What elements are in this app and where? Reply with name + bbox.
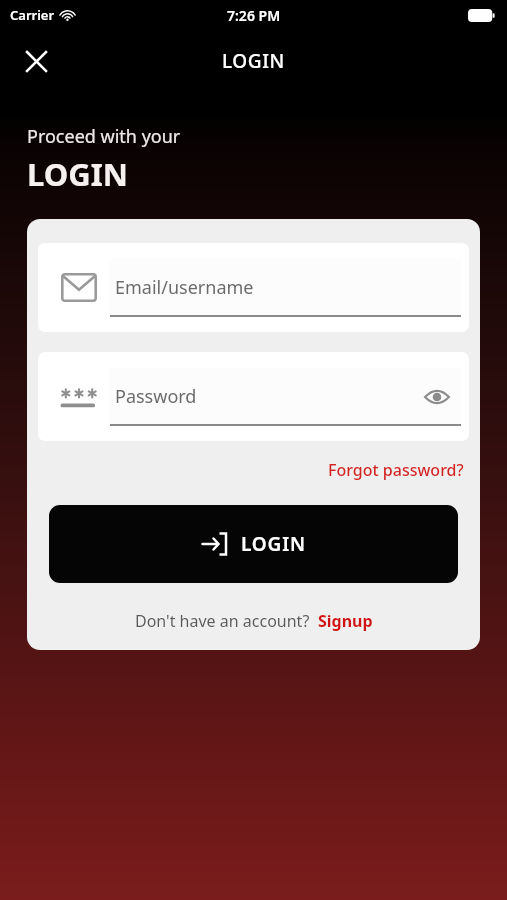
staticText: 7:26 PM (227, 6, 281, 25)
staticText: Forgot password? (328, 459, 464, 481)
button[interactable]: Close (14, 39, 58, 83)
staticText: Don't have an account? (135, 610, 310, 632)
button[interactable]: Email/username (38, 243, 469, 332)
other: Show password (424, 388, 450, 406)
button[interactable]: Forgot password? (324, 457, 468, 483)
staticText: Proceed with your (27, 124, 181, 149)
staticText: LOGIN (241, 531, 306, 557)
staticText: Password (115, 384, 424, 409)
button[interactable]: Don't have an account? (131, 608, 377, 634)
staticText: LOGIN (27, 153, 128, 195)
staticText: Signup (318, 610, 373, 632)
button[interactable]: LOGIN (49, 505, 458, 583)
staticText: LOGIN (222, 48, 285, 74)
staticText: Carrier (10, 6, 55, 24)
staticText: Email/username (115, 275, 456, 300)
button[interactable]: Password (38, 352, 469, 441)
